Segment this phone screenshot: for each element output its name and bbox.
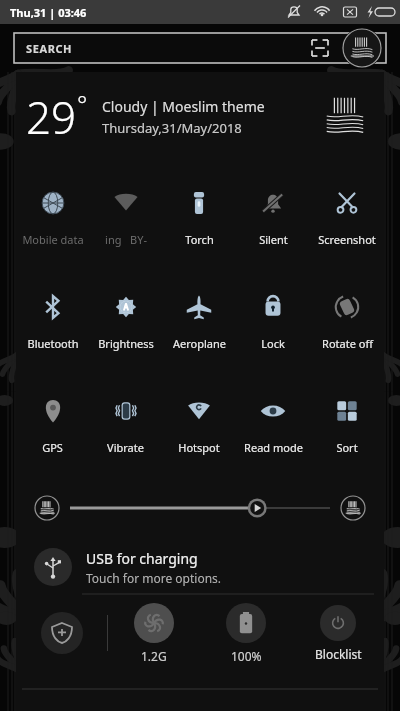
staticText: Aeroplane [173, 336, 226, 351]
button[interactable]: Brightness high [340, 495, 366, 521]
button[interactable]: ing BY- [89, 170, 162, 274]
staticText: Blocklist [315, 646, 362, 662]
staticText: Silent [259, 232, 288, 247]
staticText: Cloudy | Moeslim theme [102, 97, 265, 116]
staticText: Thursday,31/May/2018 [102, 119, 242, 137]
button[interactable]: 100% [200, 601, 292, 665]
staticText: 100% [231, 648, 262, 664]
button[interactable]: Screenshot [310, 170, 384, 274]
button[interactable]: Vibrate [89, 378, 162, 482]
staticText: 29 [26, 87, 77, 147]
button[interactable]: Read mode [236, 378, 310, 482]
button[interactable]: Lock [236, 274, 310, 378]
staticText: GPS [42, 440, 63, 455]
staticText: Sort [336, 440, 358, 455]
button[interactable]: Theme [342, 28, 382, 68]
button[interactable]: Blocklist [292, 601, 384, 665]
staticText: USB for charging [86, 549, 198, 568]
button[interactable]: Hotspot [162, 378, 236, 482]
staticText: ° [77, 87, 88, 120]
staticText: Brightness [98, 336, 154, 351]
staticText: Lock [261, 336, 285, 351]
staticText: 1.2G [141, 648, 167, 664]
button[interactable]: USB for charging [16, 540, 384, 594]
button[interactable]: Rotate off [310, 274, 384, 378]
staticText: Screenshot [318, 232, 376, 247]
staticText: Read mode [244, 440, 303, 455]
button[interactable]: Brightness [89, 274, 162, 378]
staticText: Vibrate [107, 440, 144, 455]
button[interactable]: SEARCH [14, 33, 386, 63]
staticText: Torch [185, 232, 214, 247]
staticText: Thu,31 | 03:46 [10, 5, 87, 20]
other: Scan [312, 40, 328, 56]
button[interactable] [70, 496, 330, 520]
button[interactable]: Aeroplane [162, 274, 236, 378]
staticText: Hotspot [178, 440, 220, 455]
button[interactable]: Mobile data [16, 170, 89, 274]
button[interactable]: Torch [162, 170, 236, 274]
button[interactable]: GPS [16, 378, 89, 482]
staticText: Rotate off [322, 336, 373, 351]
staticText: ing BY- [105, 232, 147, 247]
staticText: Touch for more options. [86, 570, 222, 586]
staticText: SEARCH [26, 41, 73, 56]
button[interactable]: Silent [236, 170, 310, 274]
button[interactable]: Security [16, 601, 107, 665]
button[interactable]: Sort [310, 378, 384, 482]
staticText: Mobile data [22, 232, 84, 247]
button[interactable]: 1.2G [108, 601, 200, 665]
staticText: Bluetooth [27, 336, 79, 351]
button[interactable]: Bluetooth [16, 274, 89, 378]
button[interactable]: Brightness low [34, 495, 60, 521]
